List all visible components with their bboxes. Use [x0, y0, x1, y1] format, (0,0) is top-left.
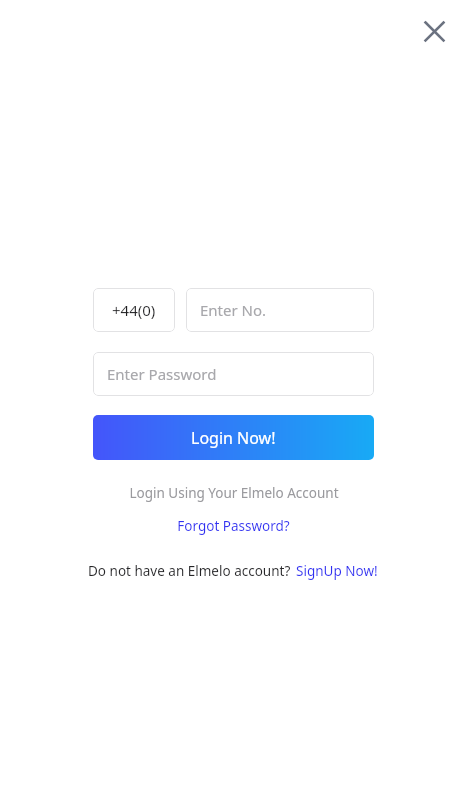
- staticText: SignUp Now!: [296, 562, 378, 580]
- button[interactable]: Login Now!: [93, 415, 374, 460]
- button[interactable]: Enter No.: [186, 288, 374, 332]
- staticText: Login Now!: [191, 427, 276, 449]
- staticText: Enter No.: [200, 300, 267, 320]
- button[interactable]: Forgot Password?: [171, 514, 296, 538]
- staticText: Forgot Password?: [177, 517, 290, 535]
- button[interactable]: Enter Password: [93, 352, 374, 396]
- staticText: Enter Password: [107, 364, 217, 384]
- staticText: Do not have an Elmelo account?: [88, 562, 291, 580]
- button[interactable]: SignUp Now!: [296, 562, 378, 580]
- button[interactable]: +44(0): [93, 288, 175, 332]
- staticText: Login Using Your Elmelo Account: [129, 484, 339, 502]
- button[interactable]: Close: [412, 9, 456, 53]
- staticText: +44(0): [112, 300, 156, 320]
